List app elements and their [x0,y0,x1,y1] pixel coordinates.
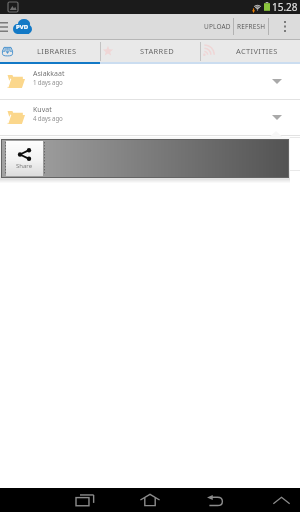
button[interactable]: Show options [254,100,300,135]
button[interactable]: STARRED [101,40,200,62]
staticText: Asiakkaat [33,69,65,79]
button[interactable]: LIBRARIES [0,40,100,62]
button[interactable]: Home [133,488,167,512]
staticText: UPLOAD [204,22,231,31]
button[interactable]: Back [198,488,232,512]
staticText: ACTIVITIES [236,46,278,56]
staticText: 1 days ago [33,78,63,86]
button[interactable]: Kuvat [0,100,300,135]
button[interactable]: Share [6,141,43,176]
button[interactable]: Show keyboard [264,488,298,512]
staticText: STARRED [140,46,174,56]
button[interactable]: UPLOAD [201,14,233,39]
staticText: REFRESH [237,22,266,31]
staticText: Kuvat [33,105,52,115]
button[interactable]: REFRESH [234,14,268,39]
button[interactable]: Recent apps [68,488,102,512]
staticText: PVD [16,23,29,31]
button[interactable]: Navigation menu [0,14,36,39]
staticText: 4 days ago [33,114,63,122]
button[interactable]: Asiakkaat [0,64,300,99]
staticText: LIBRARIES [37,46,77,56]
staticText: 15.28 [272,0,298,14]
button[interactable]: ACTIVITIES [201,40,300,62]
staticText: Share [16,162,33,170]
button[interactable]: Show options [254,64,300,99]
button[interactable]: More options [269,14,300,39]
